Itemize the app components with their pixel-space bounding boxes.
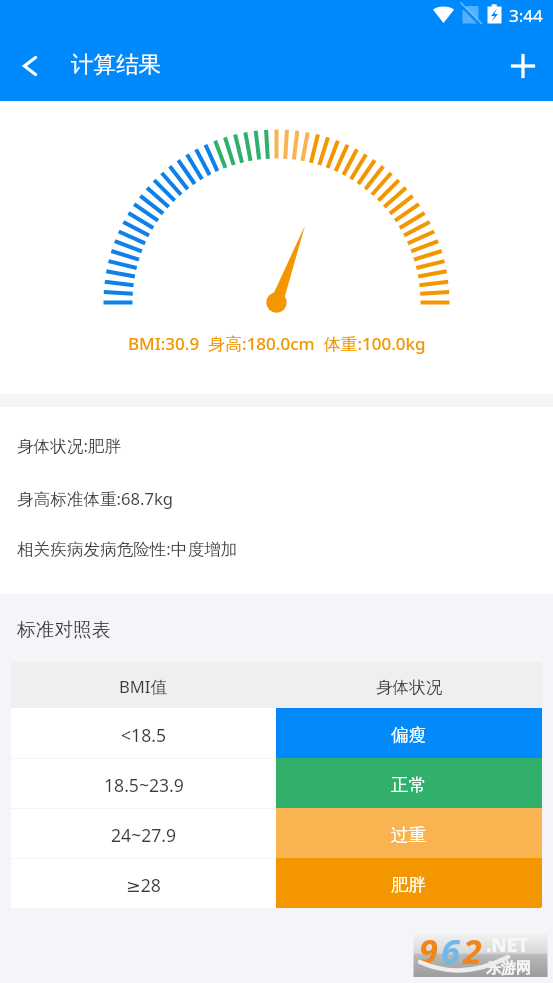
staticText: 2 [463,928,485,974]
staticText: 身高标准体重:68.7kg [17,487,173,510]
staticText: 24~27.9 [111,823,177,847]
staticText: 9 [419,928,441,974]
staticText: 计算结果 [71,50,161,78]
staticText: 乐游网 [486,959,531,978]
staticText: 身体状况 [376,677,443,698]
button[interactable]: Add [499,42,547,90]
staticText: 身体状况:肥胖 [17,434,122,457]
staticText: 过重 [391,824,427,846]
staticText: .NET [486,932,529,958]
staticText: 肥胖 [391,874,427,896]
staticText: BMI:30.9 身高:180.0cm 体重:100.0kg [128,332,426,355]
staticText: 相关疾病发病危险性:中度增加 [17,537,238,560]
staticText: BMI值 [119,675,168,698]
staticText: 偏瘦 [391,724,427,746]
staticText: 3:44 [509,4,543,27]
staticText: 标准对照表 [17,618,111,642]
staticText: 6 [441,928,463,974]
staticText: 18.5~23.9 [104,773,184,797]
staticText: <18.5 [121,723,166,747]
staticText: 正常 [391,774,427,796]
button[interactable]: Back [6,42,54,90]
staticText: ≥28 [126,873,161,897]
